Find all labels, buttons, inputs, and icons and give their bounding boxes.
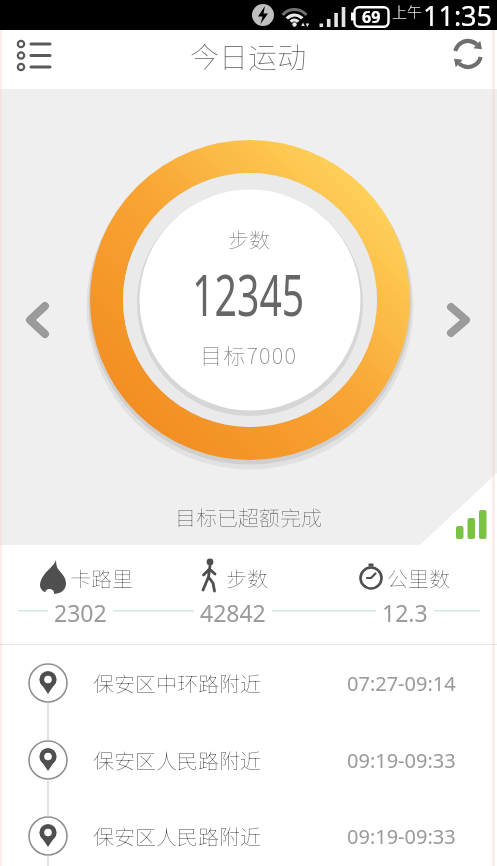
staticText: 07:27-09:14 xyxy=(347,670,456,697)
staticText: 步数 xyxy=(226,563,268,591)
staticText: 69 xyxy=(362,6,381,27)
staticText: 保安区中环路附近 xyxy=(93,668,261,698)
staticText: 保安区人民路附近 xyxy=(93,745,261,775)
staticText: 保安区人民路附近 xyxy=(93,821,261,851)
button[interactable] xyxy=(435,289,483,351)
staticText: 步数 xyxy=(228,224,270,254)
staticText: 2302 xyxy=(54,597,107,625)
staticText: 12345 xyxy=(192,256,305,332)
button[interactable]: 保安区中环路附近 xyxy=(0,645,497,721)
staticText: 卡路里 xyxy=(70,563,133,591)
button[interactable]: 保安区人民路附近 xyxy=(0,798,497,866)
staticText: 目标7000 xyxy=(200,338,298,370)
staticText: 上午 xyxy=(392,1,423,23)
staticText: 公里数 xyxy=(387,563,450,591)
staticText: 09:19-09:33 xyxy=(347,747,456,774)
staticText: 09:19-09:33 xyxy=(347,823,456,850)
staticText: 12.3 xyxy=(382,597,428,625)
button[interactable] xyxy=(437,30,497,89)
button[interactable] xyxy=(14,289,62,351)
staticText: 今日运动 xyxy=(190,34,307,76)
button[interactable] xyxy=(0,30,60,89)
staticText: 11:35 xyxy=(423,0,493,27)
button[interactable]: 保安区人民路附近 xyxy=(0,722,497,798)
staticText: 42842 xyxy=(200,597,266,625)
staticText: 目标已超额完成 xyxy=(175,502,322,532)
